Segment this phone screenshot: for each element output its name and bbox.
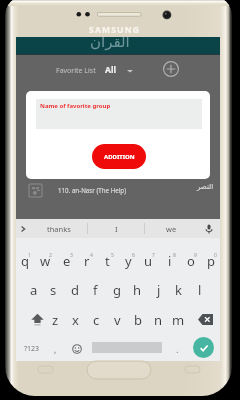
button[interactable]: h	[127, 276, 148, 304]
staticText: 6	[132, 252, 135, 259]
staticText: m	[172, 311, 185, 329]
staticText: ,	[54, 343, 57, 355]
staticText: e	[63, 252, 71, 270]
button[interactable]: a	[23, 276, 44, 304]
staticText: k	[175, 281, 182, 299]
button[interactable]: f	[85, 276, 106, 304]
staticText: I	[115, 224, 118, 234]
button[interactable]: ?123	[21, 336, 43, 361]
staticText: s	[50, 281, 57, 299]
staticText: g	[113, 281, 121, 299]
button[interactable]: x	[65, 306, 86, 334]
staticText: Name of favorite group	[40, 102, 111, 110]
button[interactable]: Add favorite list	[162, 60, 180, 78]
button[interactable]: w	[35, 247, 56, 275]
staticText: .	[176, 343, 179, 355]
staticText: 7	[152, 252, 155, 259]
staticText: d	[71, 281, 79, 299]
staticText: p	[207, 252, 215, 270]
staticText: b	[134, 311, 142, 329]
staticText: r	[84, 252, 90, 270]
button[interactable]: More suggestions	[16, 219, 30, 238]
button[interactable]: n	[148, 306, 169, 334]
staticText: u	[144, 252, 153, 270]
staticText: n	[154, 311, 163, 329]
button[interactable]: o	[180, 247, 201, 275]
button[interactable]: thanks	[30, 219, 87, 238]
staticText: thanks	[47, 224, 71, 234]
staticText: f	[93, 281, 98, 299]
button[interactable]: Done	[193, 337, 214, 358]
button[interactable]: Backspace	[192, 305, 218, 333]
button[interactable]: y	[118, 247, 139, 275]
staticText: z	[52, 311, 59, 329]
button[interactable]: i	[159, 247, 180, 275]
staticText: a	[30, 281, 38, 299]
staticText: ?123	[24, 344, 40, 354]
staticText: j	[157, 281, 161, 299]
staticText: we	[166, 224, 177, 234]
button[interactable]: Voice input	[197, 219, 220, 238]
button[interactable]: j	[148, 276, 169, 304]
button[interactable]: g	[106, 276, 127, 304]
button[interactable]: r	[76, 247, 97, 275]
button[interactable]: s	[43, 276, 64, 304]
button[interactable]: t	[97, 247, 118, 275]
button[interactable]: p	[200, 247, 221, 275]
staticText: 1	[28, 252, 31, 259]
button[interactable]: e	[56, 247, 77, 275]
staticText: SAMSUNG	[89, 24, 141, 36]
button[interactable]: k	[168, 276, 189, 304]
staticText: 0	[214, 252, 217, 259]
button[interactable]: ADDITION	[92, 144, 146, 169]
staticText: h	[133, 281, 142, 299]
staticText: t	[105, 252, 110, 270]
button[interactable]: u	[138, 247, 159, 275]
button[interactable]: z	[45, 306, 66, 334]
staticText: 5	[111, 252, 114, 259]
staticText: x	[72, 311, 79, 329]
button[interactable]: b	[127, 306, 148, 334]
button[interactable]: v	[107, 306, 128, 334]
staticText: y	[125, 252, 132, 270]
button[interactable]: ,	[46, 336, 64, 361]
staticText: q	[21, 252, 29, 270]
staticText: 110. an-Nasr (The Help)	[58, 186, 127, 194]
button[interactable]: m	[168, 306, 189, 334]
button[interactable]: d	[64, 276, 85, 304]
button[interactable]: c	[86, 306, 107, 334]
staticText: 2	[49, 252, 52, 259]
button[interactable]: 110. an-Nasr (The Help)	[16, 180, 220, 200]
staticText: c	[93, 311, 100, 329]
staticText: 8	[173, 252, 176, 259]
staticText: 4	[90, 252, 93, 259]
staticText: w	[40, 252, 51, 270]
button[interactable]: we	[145, 219, 197, 238]
staticText: Favorite List	[56, 66, 96, 76]
staticText: v	[114, 311, 121, 329]
staticText: All	[105, 64, 116, 76]
staticText: i	[168, 252, 172, 270]
staticText: القرآن	[90, 37, 130, 50]
button[interactable]: I	[88, 219, 144, 238]
button[interactable]: Emoji	[67, 336, 86, 361]
button[interactable]: l	[189, 276, 210, 304]
staticText: o	[187, 252, 195, 270]
staticText: ADDITION	[104, 153, 135, 161]
button[interactable]: q	[14, 247, 35, 275]
button[interactable]: Shift	[23, 305, 51, 333]
button[interactable]: Name of favorite group	[36, 99, 202, 129]
staticText: النصر	[197, 183, 214, 191]
button[interactable]: .	[169, 336, 186, 361]
staticText: 9	[194, 252, 197, 259]
staticText: 3	[70, 252, 73, 259]
staticText: l	[198, 281, 202, 299]
